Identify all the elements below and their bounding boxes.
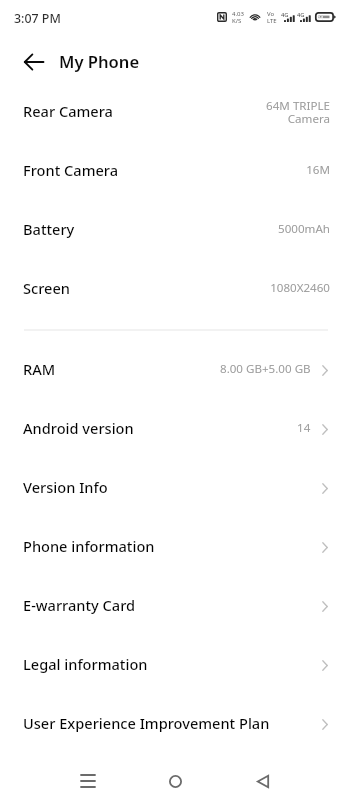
staticText: K/S [232, 17, 242, 25]
staticText: 14 [297, 420, 311, 436]
staticText: Rear Camera [23, 101, 113, 121]
staticText: 1080X2460 [270, 280, 330, 296]
button[interactable]: Rear Camera [0, 81, 351, 140]
button[interactable]: Back [14, 42, 54, 82]
staticText: Legal information [23, 654, 148, 674]
staticText: 4.03 [232, 10, 244, 18]
staticText: 16M [306, 162, 330, 178]
button[interactable]: Recent apps [64, 763, 112, 799]
button[interactable]: Front Camera [0, 140, 351, 199]
staticText: Front Camera [23, 160, 119, 180]
staticText: E-warranty Card [23, 595, 136, 615]
staticText: My Phone [59, 50, 140, 73]
staticText: Vo [267, 10, 275, 18]
staticText: Camera [287, 111, 330, 127]
button[interactable]: Phone information [0, 516, 351, 575]
staticText: Version Info [23, 477, 108, 497]
staticText: LTE [267, 17, 277, 25]
staticText: Battery [23, 219, 75, 239]
staticText: RAM [23, 359, 56, 379]
staticText: 64M TRIPLE [266, 98, 330, 114]
button[interactable]: Home [151, 763, 199, 799]
button[interactable]: E-warranty Card [0, 575, 351, 634]
staticText: 8.00 GB+5.00 GB [220, 361, 311, 377]
staticText: Android version [23, 418, 134, 438]
staticText: Phone information [23, 536, 155, 556]
staticText: 4G [297, 11, 305, 19]
staticText: 4G [281, 11, 289, 19]
button[interactable]: Back [239, 763, 287, 799]
staticText: 74 [317, 14, 324, 21]
button[interactable]: Battery [0, 199, 351, 258]
button[interactable]: Legal information [0, 634, 351, 693]
staticText: 5000mAh [278, 221, 330, 237]
button[interactable]: Android version [0, 398, 351, 457]
staticText: User Experience Improvement Plan [23, 713, 270, 733]
button[interactable]: Version Info [0, 457, 351, 516]
button[interactable]: User Experience Improvement Plan [0, 693, 351, 752]
staticText: Screen [23, 278, 70, 298]
button[interactable]: RAM [0, 339, 351, 398]
staticText: 3:07 PM [14, 10, 61, 27]
button[interactable]: Screen [0, 258, 351, 317]
